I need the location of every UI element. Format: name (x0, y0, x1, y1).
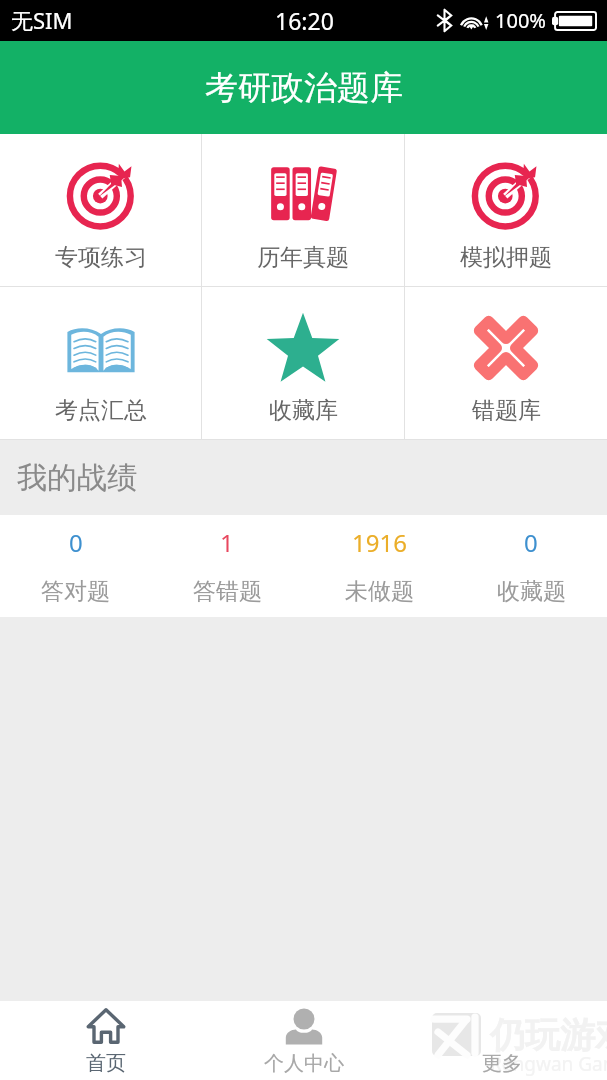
staticText: 错题库 (472, 396, 541, 425)
button[interactable]: 更多 (403, 1001, 601, 1080)
staticText: 考研政治题库 (205, 67, 403, 109)
staticText: Rengwan Games (490, 1051, 607, 1077)
staticText: 0 (69, 526, 83, 559)
button[interactable]: 0 (0, 515, 151, 617)
staticText: 仍玩游戏 (490, 1013, 607, 1057)
button[interactable]: 个人中心 (205, 1001, 403, 1080)
staticText: 个人中心 (264, 1051, 344, 1076)
staticText: 0 (524, 526, 538, 559)
staticText: 我的战绩 (17, 459, 137, 497)
staticText: 收藏题 (497, 577, 566, 606)
staticText: 历年真题 (257, 243, 349, 272)
staticText: 答对题 (41, 577, 110, 606)
staticText: 1916 (352, 526, 407, 559)
staticText: 考点汇总 (55, 396, 147, 425)
button[interactable]: 考点汇总 (0, 287, 201, 439)
staticText: 1 (220, 526, 234, 559)
button[interactable]: 首页 (6, 1001, 205, 1080)
button[interactable]: 0 (455, 515, 607, 617)
button[interactable]: 收藏库 (202, 287, 404, 439)
button[interactable]: 专项练习 (0, 134, 201, 286)
staticText: 专项练习 (55, 243, 147, 272)
staticText: 首页 (86, 1051, 126, 1076)
staticText: 100% (495, 7, 546, 34)
staticText: 未做题 (345, 577, 414, 606)
button[interactable]: 错题库 (405, 287, 607, 439)
staticText: 无SIM (11, 5, 73, 35)
button[interactable]: 1916 (303, 515, 455, 617)
staticText: 更多 (482, 1051, 522, 1076)
staticText: 收藏库 (269, 396, 338, 425)
staticText: 答错题 (193, 577, 262, 606)
staticText: 模拟押题 (460, 243, 552, 272)
button[interactable]: 历年真题 (202, 134, 404, 286)
staticText: 16:20 (275, 5, 334, 36)
button[interactable]: 模拟押题 (405, 134, 607, 286)
button[interactable]: 1 (151, 515, 303, 617)
